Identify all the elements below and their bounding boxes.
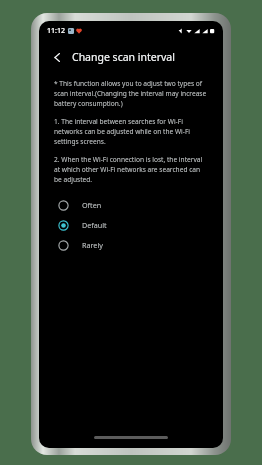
staticText: Often (82, 200, 102, 210)
button[interactable]: Often (39, 195, 223, 215)
button[interactable]: Rarely (39, 235, 223, 255)
staticText: 2. When the Wi-Fi connection is lost, th… (54, 155, 208, 184)
button[interactable]: Back (47, 47, 67, 67)
staticText: 1. The interval between searches for Wi-… (54, 117, 208, 146)
staticText: 11:12 (47, 26, 65, 36)
button[interactable]: Default (39, 215, 223, 235)
staticText: Change scan interval (72, 50, 175, 64)
staticText: Rarely (82, 240, 103, 250)
staticText: Default (82, 220, 107, 230)
staticText: * This function allows you to adjust two… (54, 79, 208, 108)
